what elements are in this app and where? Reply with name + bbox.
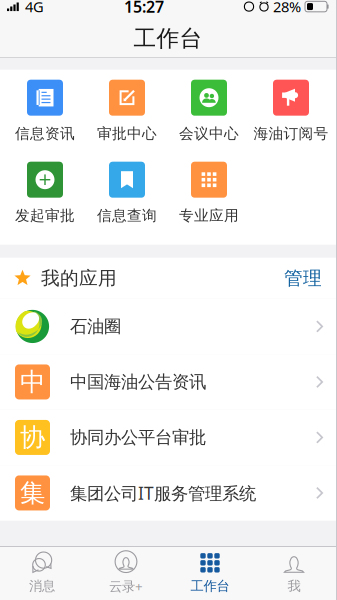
staticText: 会议中心 xyxy=(179,125,239,143)
staticText: 消息 xyxy=(29,578,55,594)
staticText: 我 xyxy=(287,578,300,594)
staticText: 中国海油公告资讯 xyxy=(70,371,206,393)
button[interactable]: 会议中心 xyxy=(168,80,250,152)
staticText: 28% xyxy=(273,0,301,16)
staticText: 云录+ xyxy=(109,577,143,595)
button[interactable]: 发起审批 xyxy=(4,162,86,234)
staticText: 海油订阅号 xyxy=(253,125,328,143)
button[interactable]: 审批中心 xyxy=(86,80,168,152)
staticText: 集 xyxy=(20,477,45,508)
button[interactable]: 工作台 xyxy=(168,547,252,600)
button[interactable]: 我 xyxy=(252,547,336,600)
staticText: 石油圈 xyxy=(70,316,121,337)
staticText: 管理 xyxy=(284,267,322,290)
staticText: 集团公司IT服务管理系统 xyxy=(70,481,256,504)
button[interactable]: 云录+ xyxy=(84,547,168,600)
staticText: 我的应用 xyxy=(41,267,117,290)
button[interactable]: 中 xyxy=(0,354,336,410)
staticText: 信息查询 xyxy=(97,207,157,225)
button[interactable]: 信息资讯 xyxy=(4,80,86,152)
staticText: 工作台 xyxy=(190,578,229,594)
button[interactable]: 管理 xyxy=(270,256,336,301)
button[interactable]: 消息 xyxy=(0,547,84,600)
button[interactable]: 专业应用 xyxy=(168,162,250,234)
staticText: 发起审批 xyxy=(15,207,75,225)
staticText: 专业应用 xyxy=(179,207,239,225)
button[interactable]: 协 xyxy=(0,410,336,465)
staticText: 中 xyxy=(20,366,45,397)
button[interactable]: 石油圈 xyxy=(0,299,336,354)
staticText: 15:27 xyxy=(124,0,164,17)
staticText: 协同办公平台审批 xyxy=(70,427,206,448)
staticText: 审批中心 xyxy=(97,125,157,143)
button[interactable]: 信息查询 xyxy=(86,162,168,234)
button[interactable]: 集 xyxy=(0,465,336,521)
staticText: 4G xyxy=(25,0,44,16)
staticText: 协 xyxy=(20,422,45,453)
staticText: 工作台 xyxy=(133,25,202,52)
button[interactable]: 海油订阅号 xyxy=(250,80,332,152)
staticText: 信息资讯 xyxy=(15,125,75,143)
